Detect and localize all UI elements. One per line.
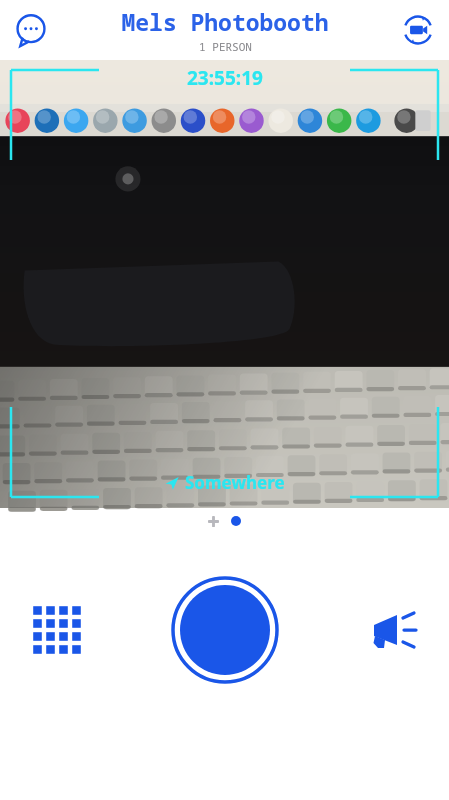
staticText: Mels Photobooth xyxy=(121,6,329,37)
button[interactable]: Add xyxy=(202,510,224,532)
button[interactable]: Page 1 xyxy=(225,510,247,532)
button[interactable]: Flip camera xyxy=(395,7,441,53)
staticText: Somewhere xyxy=(185,471,285,494)
staticText: 1 PERSON xyxy=(199,39,252,54)
staticText: 23:55:19 xyxy=(187,65,263,91)
button[interactable]: Gallery grid xyxy=(20,593,94,667)
button[interactable]: Messages xyxy=(8,7,54,53)
button[interactable]: Take photo xyxy=(169,574,281,686)
button[interactable]: Announce xyxy=(355,593,429,667)
button[interactable]: 23:55:19 xyxy=(0,60,449,508)
